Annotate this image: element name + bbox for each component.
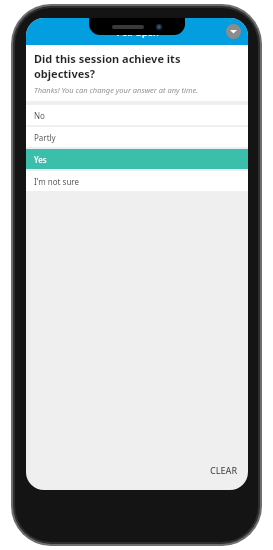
staticText: CLEAR [210,464,238,476]
staticText: I'm not sure [34,176,80,187]
button[interactable]: I'm not sure [26,171,248,191]
staticText: Yes [34,154,47,165]
button[interactable]: Open poll menu [226,24,241,39]
staticText: Thanks! You can change your answer at an… [34,85,199,95]
button[interactable]: Partly [26,127,248,147]
button[interactable]: No [26,105,248,125]
button[interactable]: Yes [26,149,248,169]
staticText: Partly [34,132,56,143]
staticText: Did this session achieve its objectives? [34,51,240,81]
button[interactable]: CLEAR [200,460,248,480]
staticText: Poll Open [116,26,159,38]
staticText: No [34,110,45,121]
